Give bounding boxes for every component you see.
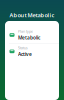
staticText: Metabolic	[18, 34, 40, 41]
staticText: About Metabolic	[9, 11, 54, 19]
button[interactable]: Status	[5, 43, 59, 59]
staticText: Plan type	[18, 29, 33, 34]
button[interactable]: Plan type	[5, 27, 59, 43]
staticText: Status	[18, 45, 28, 50]
staticText: Active	[18, 51, 32, 57]
